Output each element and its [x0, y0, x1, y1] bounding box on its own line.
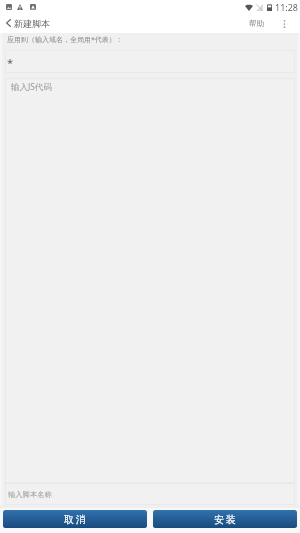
button[interactable]: 输入脚本名称 [5, 483, 295, 505]
button[interactable]: Back 新建脚本 [0, 14, 237, 33]
staticText: 11:28 [275, 1, 299, 13]
button[interactable]: 安 装 [153, 510, 297, 528]
staticText: * [7, 55, 14, 70]
button[interactable]: More options [275, 14, 294, 33]
staticText: 帮助 [249, 19, 264, 28]
staticText: 新建脚本 [14, 18, 50, 29]
button[interactable]: 取 消 [3, 510, 147, 528]
staticText: 取 消 [64, 512, 86, 526]
button[interactable]: 帮助 [237, 14, 275, 33]
staticText: 输入JS代码 [11, 81, 52, 93]
staticText: 应用到（输入域名，全局用*代表）： [7, 35, 123, 45]
button[interactable]: * [5, 50, 295, 73]
staticText: 安 装 [214, 512, 236, 526]
staticText: 输入脚本名称 [8, 490, 52, 499]
